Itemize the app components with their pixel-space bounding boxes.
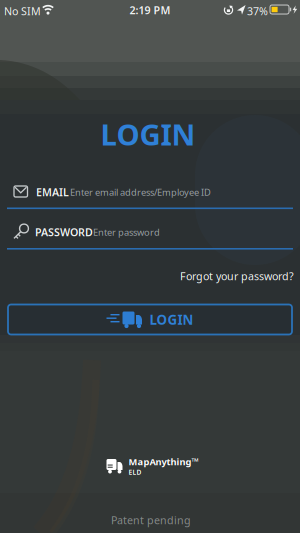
staticText: 37%	[247, 4, 268, 18]
staticText: Patent pending	[111, 513, 191, 527]
staticText: Enter email address/Employee ID	[70, 186, 211, 198]
staticText: EMAIL	[36, 185, 69, 199]
button[interactable]: Forgot your password?	[180, 269, 294, 283]
staticText: LOGIN	[100, 114, 195, 153]
button[interactable]: PASSWORD	[0, 215, 300, 260]
staticText: No SIM	[4, 4, 41, 18]
button[interactable]: EMAIL	[0, 165, 300, 215]
staticText: Enter password	[93, 226, 160, 238]
staticText: ELD	[128, 468, 141, 477]
button[interactable]: LOGIN	[8, 304, 292, 334]
staticText: Forgot your password?	[180, 269, 294, 283]
staticText: PASSWORD	[35, 225, 93, 239]
staticText: MapAnything™	[128, 455, 198, 468]
staticText: LOGIN	[149, 311, 193, 328]
staticText: 2:19 PM	[129, 3, 170, 17]
